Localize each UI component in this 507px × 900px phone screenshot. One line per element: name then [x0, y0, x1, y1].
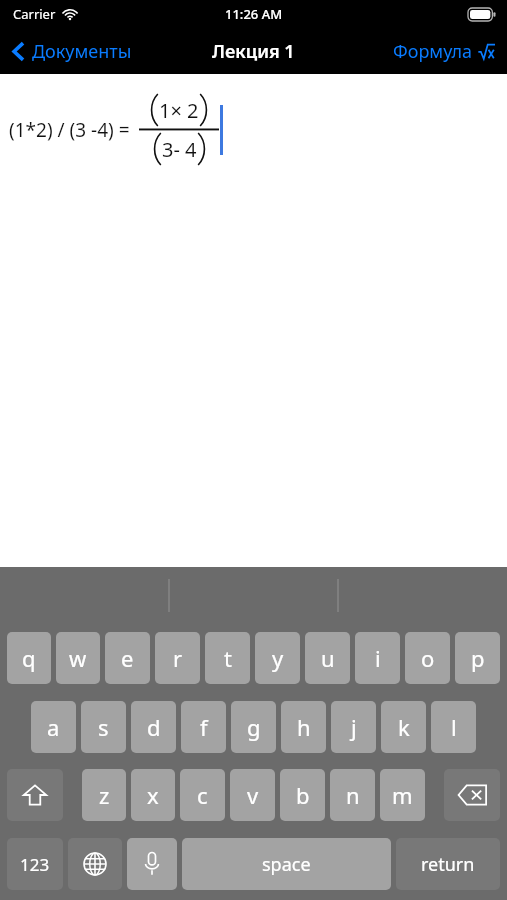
staticText: h	[297, 712, 311, 742]
staticText: d	[147, 712, 161, 742]
button[interactable]: Формула	[381, 33, 507, 70]
staticText: o	[421, 643, 435, 673]
staticText: t	[224, 643, 232, 673]
button[interactable]: Документы	[0, 33, 146, 70]
button[interactable]: l	[431, 701, 476, 753]
staticText: Лекция 1	[212, 39, 295, 64]
button[interactable]: y	[255, 632, 300, 684]
staticText: 3- 4	[162, 136, 197, 163]
button[interactable]: e	[105, 632, 150, 684]
button[interactable]: x	[131, 769, 175, 821]
staticText: k	[398, 712, 410, 742]
button[interactable]: k	[381, 701, 426, 753]
staticText: v	[247, 780, 259, 810]
button[interactable]: u	[305, 632, 350, 684]
staticText: 11:26 AM	[225, 5, 283, 23]
button[interactable]: a	[31, 701, 76, 753]
staticText: r	[173, 643, 183, 673]
button[interactable]: n	[330, 769, 375, 821]
staticText: Формула	[393, 39, 473, 64]
button[interactable]: j	[331, 701, 376, 753]
staticText: x	[147, 780, 159, 810]
button[interactable]: p	[455, 632, 500, 684]
staticText: w	[69, 643, 87, 673]
staticText: 123	[20, 853, 50, 876]
staticText: f	[200, 712, 208, 742]
staticText: u	[321, 643, 335, 673]
staticText: z	[99, 780, 110, 810]
button[interactable]: m	[380, 769, 425, 821]
staticText: 1× 2	[159, 97, 199, 124]
button[interactable]: b	[280, 769, 325, 821]
staticText: space	[262, 852, 311, 877]
staticText: p	[471, 643, 485, 673]
staticText: j	[351, 712, 357, 742]
button[interactable]: return	[396, 838, 500, 890]
button[interactable]: Shift	[7, 769, 63, 821]
staticText: y	[272, 643, 284, 673]
staticText: g	[247, 712, 261, 742]
button[interactable]: c	[180, 769, 225, 821]
button[interactable]: space	[182, 838, 391, 890]
button[interactable]: t	[205, 632, 250, 684]
button[interactable]: 123	[7, 838, 63, 890]
staticText: c	[197, 780, 208, 810]
button[interactable]: w	[56, 632, 100, 684]
staticText: m	[392, 780, 413, 810]
button[interactable]: g	[231, 701, 276, 753]
button[interactable]: v	[230, 769, 275, 821]
button[interactable]: r	[155, 632, 200, 684]
staticText: return	[421, 852, 475, 877]
staticText: i	[375, 643, 381, 673]
staticText: Документы	[32, 39, 132, 64]
staticText: a	[47, 712, 60, 742]
staticText: b	[296, 780, 310, 810]
staticText: Carrier	[13, 5, 56, 23]
staticText: n	[346, 780, 360, 810]
staticText: l	[451, 712, 457, 742]
button[interactable]: Change keyboard	[68, 838, 122, 890]
button[interactable]: h	[281, 701, 326, 753]
button[interactable]: q	[7, 632, 51, 684]
button[interactable]: Backspace	[444, 769, 500, 821]
staticText: (1*2) / (3 -4) =	[9, 117, 130, 143]
staticText: q	[22, 643, 36, 673]
staticText: e	[121, 643, 134, 673]
button[interactable]: d	[131, 701, 176, 753]
button[interactable]: o	[405, 632, 450, 684]
button[interactable]: z	[82, 769, 126, 821]
staticText: s	[98, 712, 109, 742]
button[interactable]: i	[355, 632, 400, 684]
button[interactable]: Dictation	[127, 838, 177, 890]
button[interactable]: s	[81, 701, 126, 753]
button[interactable]: f	[181, 701, 226, 753]
